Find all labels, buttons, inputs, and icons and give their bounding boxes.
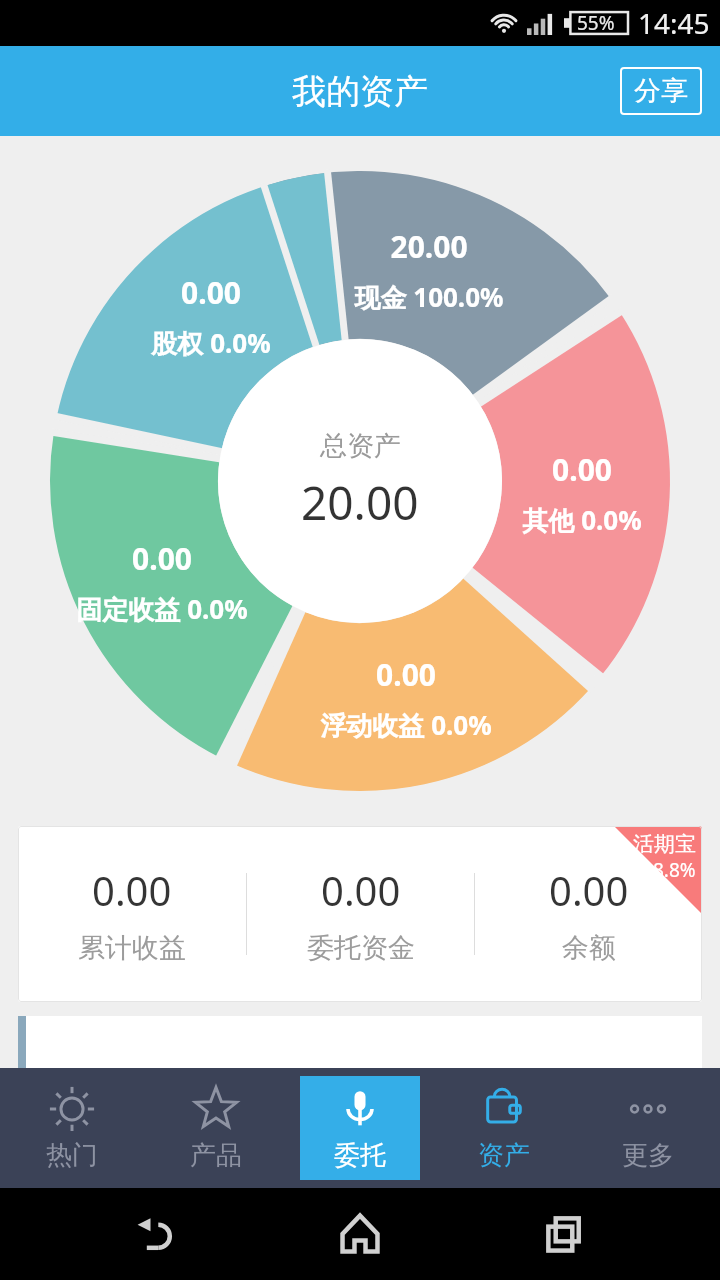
- button[interactable]: Home: [312, 1188, 408, 1280]
- staticText: 委托: [334, 1139, 386, 1172]
- staticText: 资产: [478, 1139, 530, 1172]
- staticText: 0.00: [321, 863, 401, 917]
- staticText: 8.8%: [653, 857, 696, 883]
- staticText: 分享: [634, 74, 688, 108]
- staticText: 现金 100.0%: [354, 279, 504, 315]
- button[interactable]: 委托: [300, 1076, 420, 1180]
- staticText: 55%: [577, 10, 615, 36]
- button[interactable]: 资产: [444, 1076, 564, 1180]
- staticText: 委托资金: [307, 931, 415, 965]
- staticText: 我的资产: [292, 70, 428, 113]
- button[interactable]: Recents: [516, 1188, 612, 1280]
- staticText: 其他 0.0%: [522, 502, 642, 538]
- staticText: 0.00: [549, 863, 629, 917]
- button[interactable]: Back: [108, 1188, 204, 1280]
- staticText: 股权 0.0%: [151, 325, 271, 361]
- button[interactable]: 分享: [620, 67, 702, 115]
- button[interactable]: 热门: [12, 1076, 132, 1180]
- staticText: 总资产: [320, 429, 401, 463]
- staticText: 20.00: [301, 471, 419, 534]
- staticText: 余额: [562, 931, 616, 965]
- staticText: 0.00: [132, 538, 192, 579]
- button[interactable]: [18, 1016, 702, 1068]
- staticText: 产品: [190, 1139, 242, 1172]
- staticText: 热门: [46, 1139, 98, 1172]
- staticText: 0.00: [376, 654, 436, 695]
- staticText: 浮动收益 0.0%: [320, 707, 492, 743]
- staticText: 20.00: [390, 226, 468, 267]
- button[interactable]: 0.00: [18, 826, 702, 1002]
- staticText: 固定收益 0.0%: [76, 591, 248, 627]
- staticText: 0.00: [181, 272, 241, 313]
- button[interactable]: 产品: [156, 1076, 276, 1180]
- staticText: 累计收益: [78, 931, 186, 965]
- staticText: 活期宝: [633, 831, 696, 857]
- staticText: 0.00: [552, 449, 612, 490]
- staticText: 0.00: [92, 863, 172, 917]
- staticText: 更多: [622, 1139, 674, 1172]
- button[interactable]: 更多: [588, 1076, 708, 1180]
- staticText: 14:45: [638, 4, 710, 42]
